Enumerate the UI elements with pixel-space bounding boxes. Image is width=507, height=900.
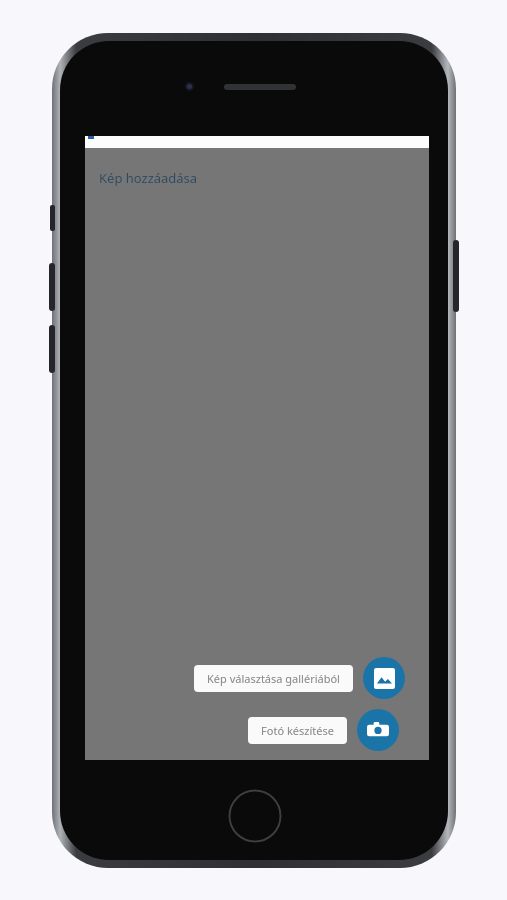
staticText: Kép hozzáadása [99,169,198,187]
button[interactable]: Fotó készítése [248,717,347,744]
staticText: Kép választása gallériából [207,671,340,686]
button[interactable]: Kép választása gallériából [363,657,405,699]
button[interactable]: Fotó készítése [357,709,399,751]
button[interactable]: Kép választása gallériából [194,665,353,692]
button[interactable]: Home [228,789,282,843]
staticText: Fotó készítése [261,723,334,738]
